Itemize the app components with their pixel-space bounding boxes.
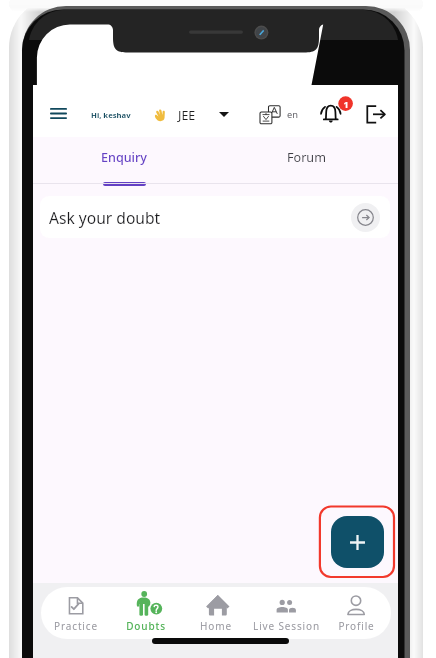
button[interactable]: Practice — [41, 587, 111, 639]
button[interactable]: Menu — [42, 100, 74, 128]
button[interactable]: Home — [181, 587, 251, 639]
staticText: Doubts — [126, 619, 166, 633]
staticText: Live Session — [253, 619, 320, 633]
staticText: Hi, keshav — [91, 110, 131, 120]
staticText: Enquiry — [101, 149, 147, 166]
button[interactable]: Enquiry — [33, 137, 215, 184]
button[interactable]: Notifications — [320, 99, 351, 130]
staticText: JEE — [178, 107, 196, 124]
button[interactable]: Language — [258, 104, 298, 125]
staticText: Practice — [54, 619, 98, 633]
button[interactable]: Live Session — [251, 587, 321, 639]
staticText: Ask your doubt — [49, 207, 161, 228]
staticText: en — [287, 108, 298, 121]
button[interactable]: Profile — [321, 587, 391, 639]
staticText: Forum — [287, 149, 326, 166]
staticText: Home — [200, 619, 232, 633]
button[interactable]: Logout — [365, 103, 388, 126]
button[interactable]: Doubts — [111, 587, 181, 639]
button[interactable]: Add doubt — [331, 516, 384, 568]
staticText: Profile — [338, 619, 375, 633]
button[interactable]: Forum — [215, 137, 398, 184]
staticText: 1 — [343, 98, 349, 110]
button[interactable]: Ask your doubt — [40, 196, 390, 238]
button[interactable]: Change exam — [214, 104, 234, 124]
